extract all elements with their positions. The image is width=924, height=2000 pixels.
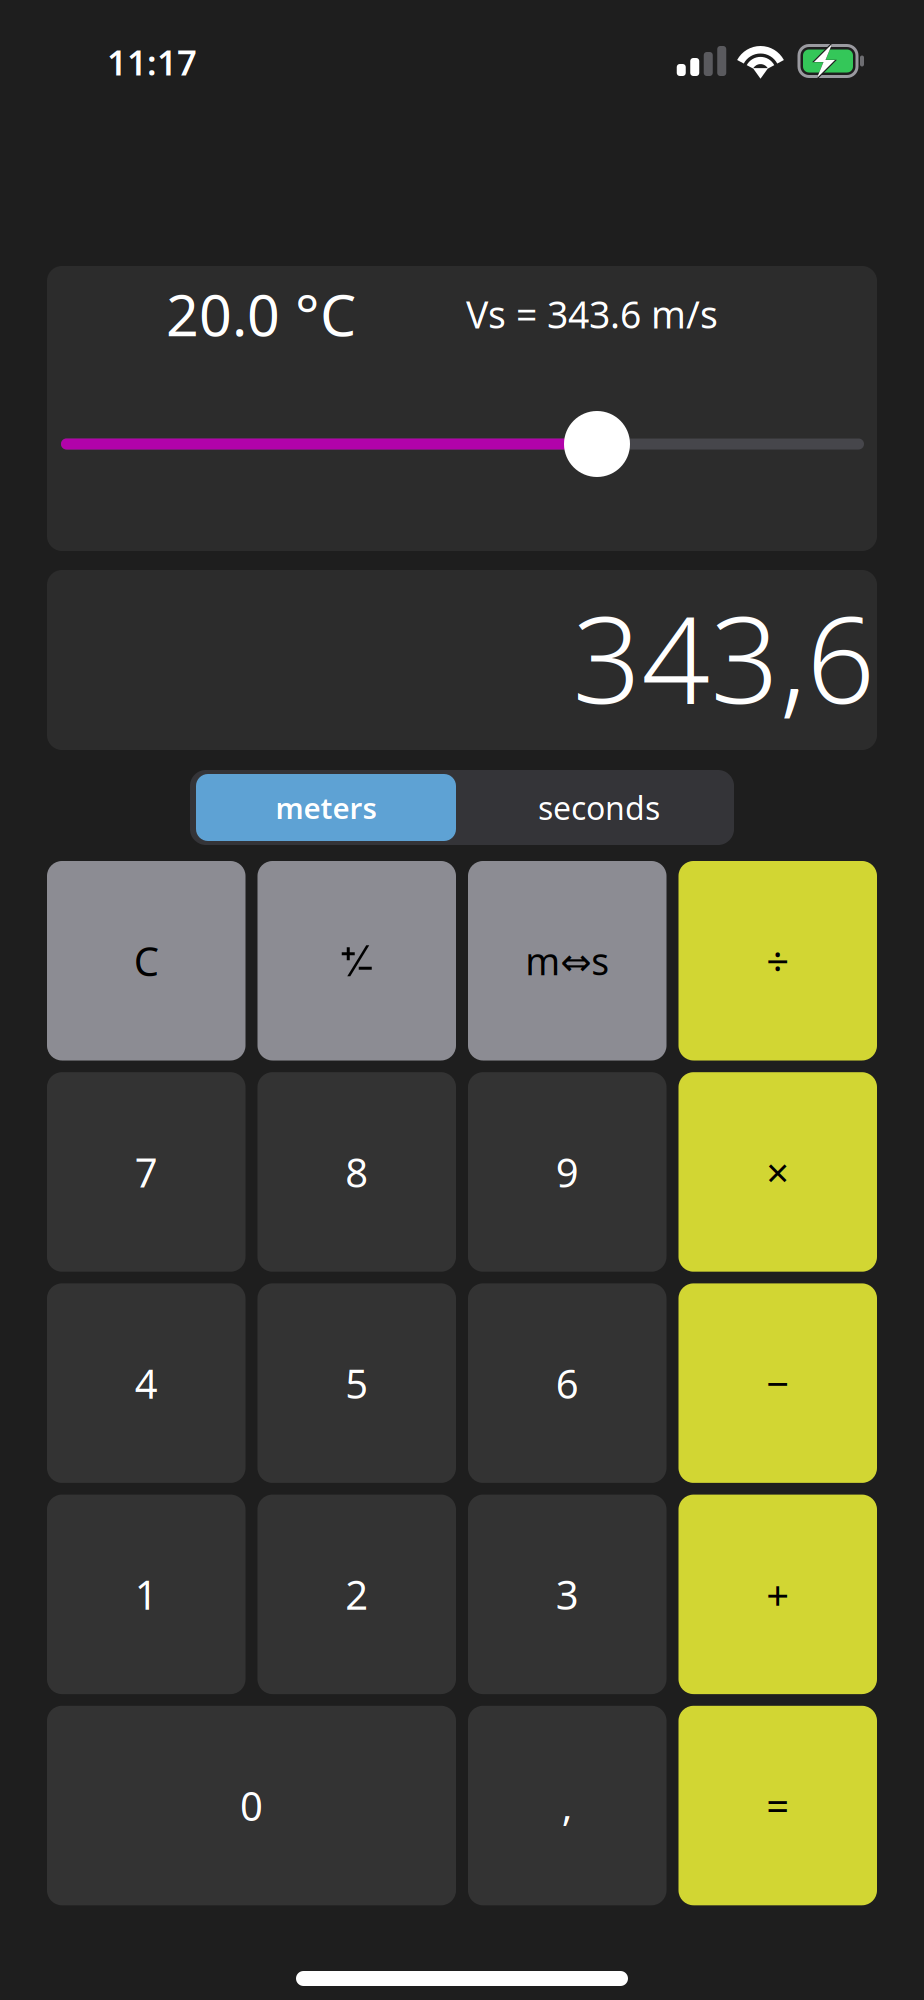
button[interactable]: ÷ bbox=[678, 861, 877, 1060]
staticText: C bbox=[134, 934, 159, 987]
staticText: ÷ bbox=[766, 934, 789, 987]
staticText: , bbox=[562, 1779, 573, 1832]
button[interactable]: 3 bbox=[468, 1495, 666, 1694]
staticText: 2 bbox=[345, 1568, 368, 1621]
button[interactable]: 4 bbox=[47, 1283, 245, 1483]
button[interactable]: C bbox=[47, 861, 245, 1060]
button[interactable]: − bbox=[678, 1283, 877, 1483]
button[interactable]: Air temperature bbox=[61, 411, 864, 477]
button[interactable]: seconds bbox=[456, 774, 728, 841]
button[interactable]: , bbox=[468, 1706, 666, 1905]
staticText: 9 bbox=[556, 1145, 579, 1198]
button[interactable]: meters bbox=[196, 774, 456, 841]
button[interactable]: 9 bbox=[468, 1072, 666, 1272]
staticText: 1 bbox=[135, 1568, 158, 1621]
staticText: Vs = 343.6 m/s bbox=[466, 289, 718, 339]
button[interactable]: 5 bbox=[257, 1283, 456, 1483]
staticText: 20.0 °C bbox=[166, 276, 356, 352]
staticText: seconds bbox=[538, 786, 660, 829]
staticText: meters bbox=[275, 788, 376, 827]
staticText: − bbox=[766, 1357, 789, 1410]
button[interactable]: 6 bbox=[468, 1283, 666, 1483]
button[interactable]: + bbox=[678, 1495, 877, 1694]
button[interactable]: m⇔s bbox=[468, 861, 666, 1060]
button[interactable]: × bbox=[678, 1072, 877, 1272]
staticText: 7 bbox=[135, 1145, 158, 1198]
staticText: 0 bbox=[240, 1779, 263, 1832]
staticText: = bbox=[766, 1779, 789, 1832]
staticText: m⇔s bbox=[525, 936, 609, 986]
staticText: 8 bbox=[345, 1145, 368, 1198]
button[interactable]: 7 bbox=[47, 1072, 245, 1272]
staticText: 6 bbox=[556, 1357, 579, 1410]
button[interactable]: 2 bbox=[257, 1495, 456, 1694]
staticText: + bbox=[766, 1568, 789, 1621]
staticText: 3 bbox=[556, 1568, 579, 1621]
button[interactable]: 1 bbox=[47, 1495, 245, 1694]
staticText: 11:17 bbox=[107, 39, 197, 85]
staticText: 5 bbox=[345, 1357, 368, 1410]
staticText: 343,6 bbox=[572, 577, 875, 737]
button[interactable]: 0 bbox=[47, 1706, 456, 1905]
staticText: × bbox=[766, 1145, 789, 1198]
button[interactable]: = bbox=[678, 1706, 877, 1905]
button[interactable]: 8 bbox=[257, 1072, 456, 1272]
button[interactable]: Toggle sign bbox=[257, 861, 456, 1060]
staticText: 4 bbox=[135, 1357, 158, 1410]
